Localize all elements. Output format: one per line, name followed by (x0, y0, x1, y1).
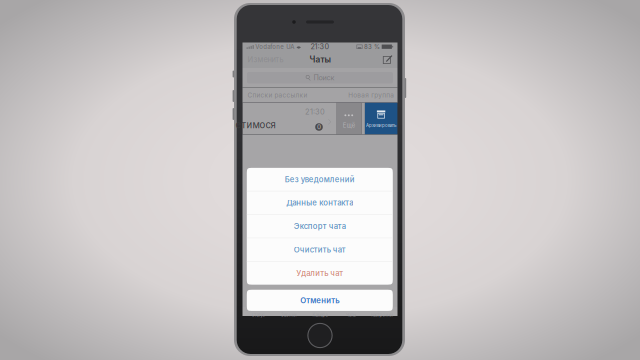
staticText: Очистить чат (294, 245, 346, 254)
button[interactable]: Удалить чат (247, 262, 393, 285)
button[interactable]: Новый чат (378, 51, 397, 68)
button[interactable]: Чаты (335, 307, 366, 316)
staticText: Настройки (370, 312, 393, 318)
button[interactable]: Статус (242, 307, 273, 316)
button[interactable]: Без уведомлений (247, 168, 393, 191)
staticText: Новая группа (348, 91, 394, 99)
button[interactable]: Списки рассылки (242, 88, 312, 102)
button[interactable]: Очистить чат (247, 238, 393, 261)
staticText: Экспорт чата (294, 222, 346, 231)
staticText: Звонки (281, 312, 297, 318)
button[interactable]: Камера (304, 307, 335, 316)
staticText: 0 (317, 123, 321, 131)
staticText: етимося (236, 119, 276, 131)
staticText: Отменить (300, 296, 339, 305)
staticText: 83 % (364, 43, 380, 50)
staticText: Vodafone UA (255, 43, 294, 50)
staticText: Изменить (247, 55, 283, 64)
button[interactable]: Отменить (247, 290, 393, 311)
staticText: 21:30 (310, 42, 329, 51)
button[interactable]: Изменить (242, 51, 288, 68)
button[interactable]: Данные контакта (247, 191, 393, 214)
button[interactable]: Архивировать (365, 103, 397, 134)
button[interactable]: Экспорт чата (247, 215, 393, 238)
staticText: Без уведомлений (285, 175, 355, 184)
staticText: Списки рассылки (247, 91, 307, 99)
staticText: Ещё (343, 122, 355, 129)
staticText: Данные контакта (286, 198, 353, 207)
button[interactable]: Поиск (247, 72, 393, 83)
staticText: Камера (312, 312, 327, 318)
staticText: 21:30 (305, 107, 325, 116)
staticText: Чаты (346, 312, 356, 318)
button[interactable]: Новая группа (345, 88, 397, 102)
button[interactable]: Настройки (366, 307, 397, 316)
button[interactable]: Ещё (336, 103, 362, 134)
staticText: Поиск (314, 73, 335, 82)
staticText: Архивировать (366, 123, 396, 128)
staticText: Удалить чат (296, 268, 343, 278)
button[interactable]: Звонки (273, 307, 304, 316)
staticText: Статус (251, 312, 264, 318)
staticText: Чаты (309, 54, 330, 64)
